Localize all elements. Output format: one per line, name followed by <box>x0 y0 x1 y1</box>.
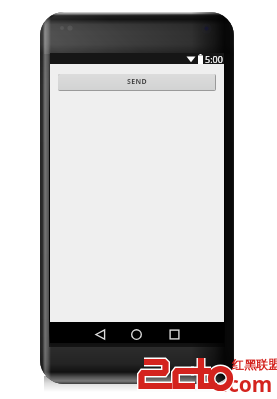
staticText: 5:00 <box>205 53 223 64</box>
staticText: 红黑联盟 <box>232 357 277 372</box>
button[interactable]: Recent apps <box>162 325 187 343</box>
button[interactable]: Back <box>88 325 113 343</box>
staticText: SEND <box>127 77 147 87</box>
staticText: .com <box>222 370 273 399</box>
button[interactable]: SEND <box>58 74 215 90</box>
button[interactable]: Home <box>124 325 149 343</box>
